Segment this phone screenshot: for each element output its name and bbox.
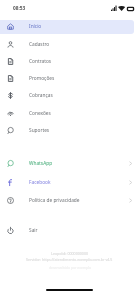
staticText: Política de privacidade (29, 197, 80, 204)
button[interactable]: WhatsApp (0, 155, 139, 172)
button[interactable]: Contratos (0, 53, 139, 70)
staticText: desenvolvido por exemplo (49, 265, 91, 270)
staticText: 08:53 (13, 5, 26, 12)
button[interactable]: Promoções (0, 70, 139, 87)
staticText: Servidor: https://atendimento.exemplo.co… (26, 257, 113, 262)
button[interactable]: Cobranças (0, 87, 139, 104)
button[interactable]: Cadastro (0, 36, 139, 53)
staticText: Leopoldi: 0000000000 (51, 251, 88, 256)
staticText: Promoções (29, 75, 55, 82)
staticText: Suportes (29, 127, 50, 134)
staticText: Cobranças (29, 92, 53, 99)
staticText: Cadastro (29, 41, 50, 48)
staticText: Contratos (29, 58, 52, 65)
staticText: Sair (29, 227, 38, 234)
button[interactable]: Suportes (0, 122, 139, 139)
button[interactable]: Sair (0, 222, 139, 239)
button[interactable]: Facebook (0, 174, 139, 191)
staticText: WhatsApp (29, 160, 53, 167)
staticText: Conexões (29, 110, 51, 117)
button[interactable]: Conexões (0, 105, 139, 122)
staticText: Início (29, 23, 42, 30)
button[interactable]: Política de privacidade (0, 192, 139, 209)
button[interactable]: Início (0, 18, 139, 35)
staticText: Facebook (29, 179, 51, 186)
